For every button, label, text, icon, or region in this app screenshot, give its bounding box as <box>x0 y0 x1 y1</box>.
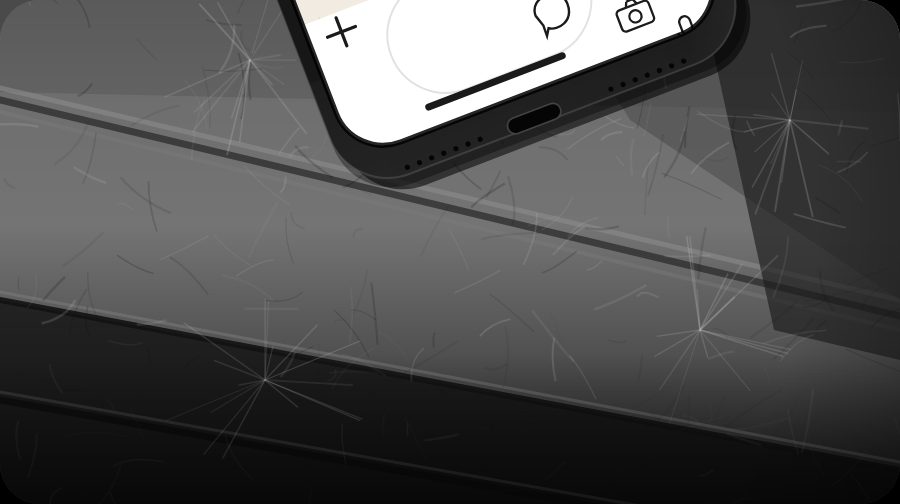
button[interactable]: WhatsApp chat on phone lying on leather … <box>0 0 900 504</box>
